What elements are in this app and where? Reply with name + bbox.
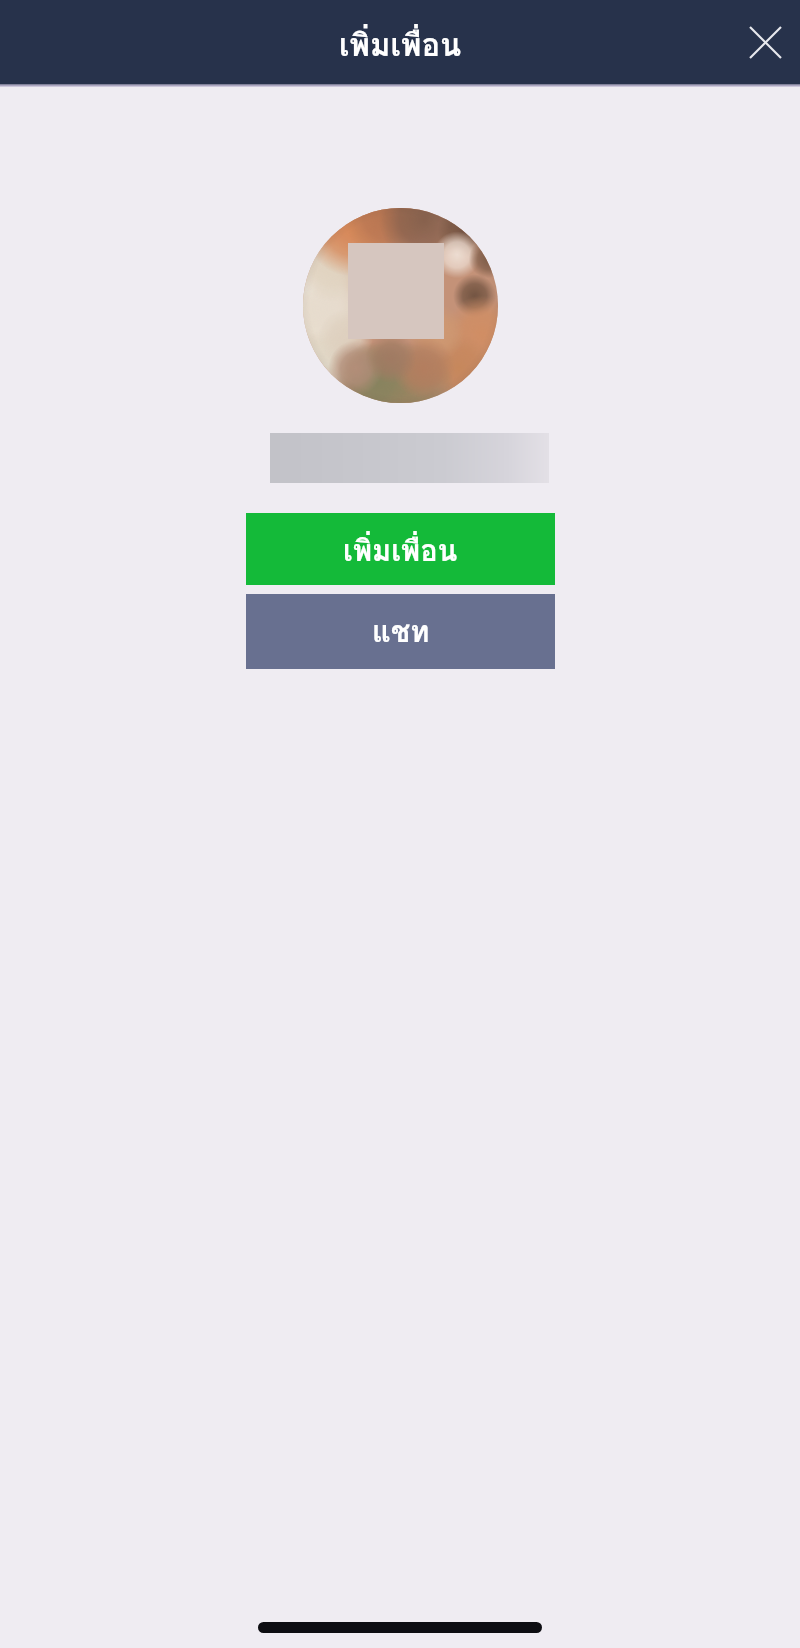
button[interactable]: เพิ่มเพื่อน <box>246 513 555 585</box>
button[interactable]: แชท <box>246 594 555 669</box>
staticText: แชท <box>372 609 430 655</box>
button[interactable]: Close <box>730 0 800 84</box>
staticText: เพิ่มเพื่อน <box>339 20 462 69</box>
staticText: เพิ่มเพื่อน <box>343 528 458 574</box>
